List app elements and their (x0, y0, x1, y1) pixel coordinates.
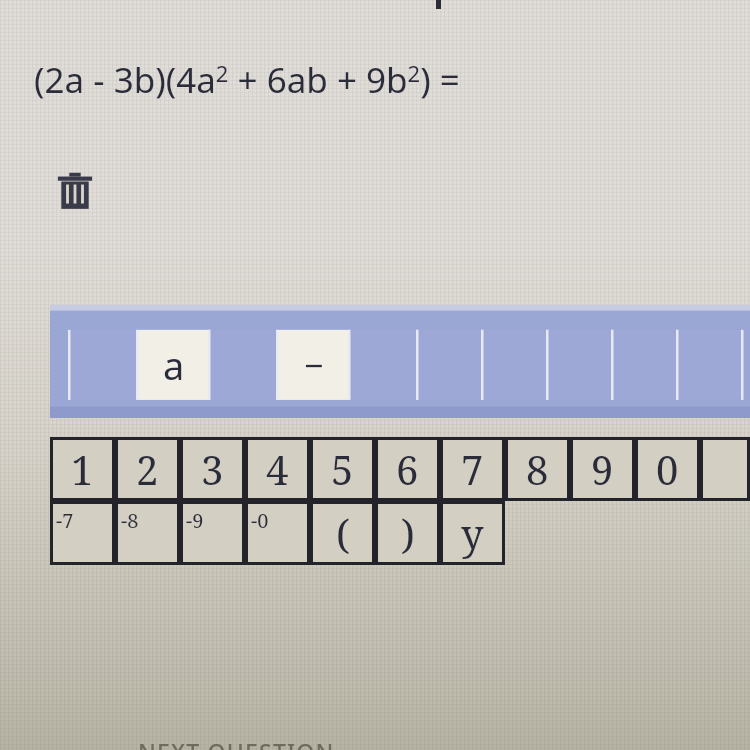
staticText: a (163, 339, 185, 391)
button[interactable]: ( (310, 501, 375, 565)
staticText: − (304, 342, 324, 388)
button[interactable]: 2 (115, 437, 180, 501)
button[interactable]: -7 (50, 501, 115, 565)
staticText: y (461, 506, 484, 560)
staticText: 2 (136, 442, 159, 496)
staticText: 7 (461, 442, 484, 496)
button[interactable]: Empty answer slot (70, 330, 138, 400)
staticText: 0 (656, 442, 679, 496)
staticText: -0 (251, 507, 269, 534)
button[interactable]: 1 (50, 437, 115, 501)
button[interactable]: 5 (310, 437, 375, 501)
button[interactable]: 7 (440, 437, 505, 501)
button[interactable]: y (440, 501, 505, 565)
button[interactable]: Empty answer slot (613, 330, 678, 400)
button[interactable]: -0 (245, 501, 310, 565)
button[interactable]: − (278, 330, 350, 400)
button[interactable]: 9 (570, 437, 635, 501)
button[interactable]: 8 (505, 437, 570, 501)
staticText: -9 (186, 507, 204, 534)
staticText: 9 (591, 442, 614, 496)
button[interactable]: Empty answer slot (350, 330, 418, 400)
button[interactable]: a (138, 330, 210, 400)
button[interactable]: 4 (245, 437, 310, 501)
button[interactable]: Empty answer slot (548, 330, 613, 400)
button[interactable]: 0 (635, 437, 700, 501)
button[interactable]: Empty answer slot (210, 330, 278, 400)
button[interactable]: 6 (375, 437, 440, 501)
button[interactable]: Empty answer slot (483, 330, 548, 400)
staticText: NEXT QUESTION (138, 736, 335, 750)
staticText: 8 (526, 442, 549, 496)
button[interactable]: ) (375, 501, 440, 565)
button[interactable]: NEXT QUESTION (138, 736, 335, 750)
button[interactable] (700, 437, 750, 501)
staticText: ) (401, 506, 415, 560)
button[interactable]: -8 (115, 501, 180, 565)
staticText: (2a - 3b)(4a2 + 6ab + 9b2) = (34, 56, 460, 104)
button[interactable]: 3 (180, 437, 245, 501)
staticText: -8 (121, 507, 139, 534)
staticText: 1 (71, 442, 94, 496)
staticText: -7 (56, 507, 74, 534)
staticText: ( (336, 506, 350, 560)
staticText: 5 (331, 442, 354, 496)
staticText: 3 (201, 442, 224, 496)
staticText: 6 (396, 442, 419, 496)
staticText: 4 (266, 442, 289, 496)
button[interactable]: Clear answer (52, 168, 98, 214)
button[interactable]: Empty answer slot (418, 330, 483, 400)
button[interactable]: Empty answer slot (678, 330, 743, 400)
button[interactable]: -9 (180, 501, 245, 565)
